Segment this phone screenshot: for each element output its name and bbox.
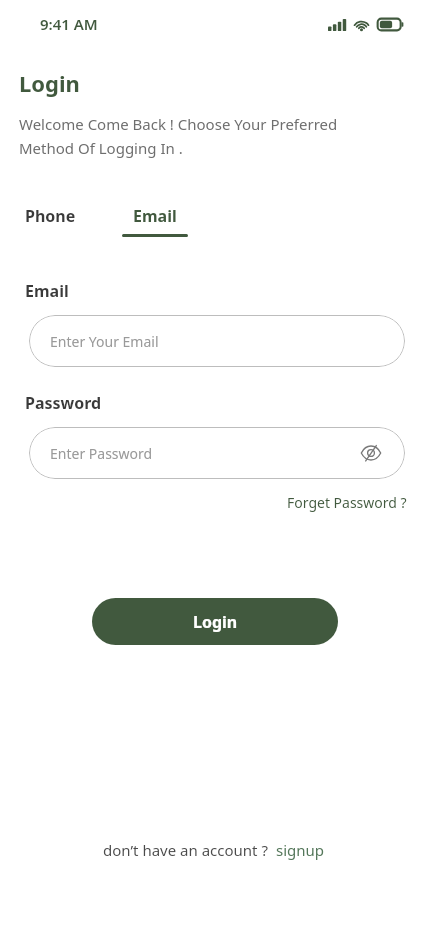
staticText: Login bbox=[19, 68, 80, 98]
button[interactable]: Phone bbox=[19, 203, 82, 229]
button[interactable]: Email bbox=[122, 203, 188, 237]
staticText: Phone bbox=[25, 205, 76, 227]
staticText: Enter Your Email bbox=[50, 332, 159, 351]
button[interactable]: Forget Password ? bbox=[283, 491, 411, 514]
staticText: Login bbox=[193, 611, 238, 633]
staticText: Welcome Come Back ! Choose Your Preferre… bbox=[19, 114, 338, 158]
staticText: don’t have an account ? bbox=[103, 840, 268, 860]
button[interactable]: Enter Your Email bbox=[29, 315, 405, 367]
staticText: Email bbox=[133, 205, 177, 227]
button[interactable]: signup bbox=[274, 838, 327, 862]
button[interactable]: Show password bbox=[358, 440, 384, 466]
button[interactable]: Enter Password bbox=[29, 427, 405, 479]
staticText: 9:41 AM bbox=[40, 14, 98, 34]
staticText: Email bbox=[25, 280, 69, 302]
staticText: Password bbox=[25, 392, 102, 414]
staticText: Enter Password bbox=[50, 444, 153, 463]
button[interactable]: Login bbox=[92, 598, 338, 645]
